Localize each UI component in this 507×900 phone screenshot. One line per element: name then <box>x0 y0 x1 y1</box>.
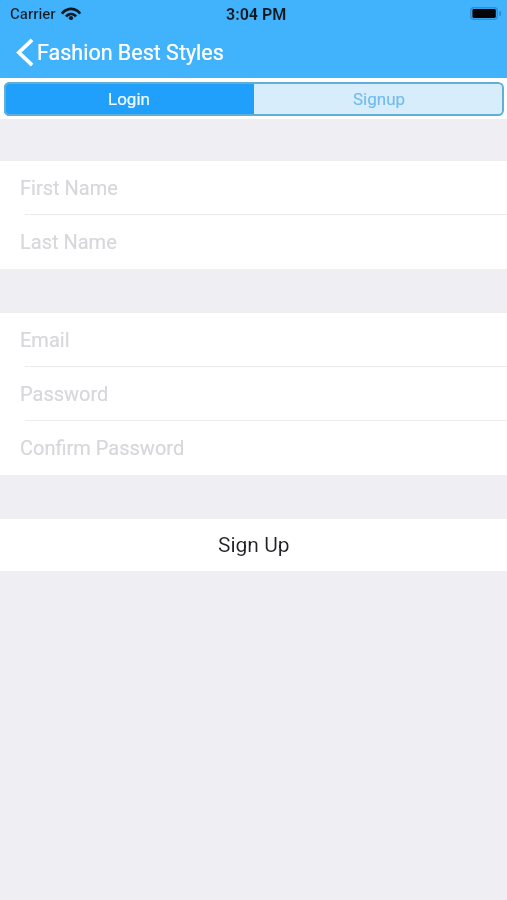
staticText: Signup <box>353 89 406 109</box>
button[interactable]: First Name <box>0 161 507 215</box>
button[interactable]: Sign Up <box>0 519 507 571</box>
staticText: Email <box>20 328 70 351</box>
staticText: Carrier <box>10 5 56 23</box>
button[interactable]: Password <box>0 367 507 421</box>
staticText: Password <box>20 382 109 405</box>
staticText: Last Name <box>20 230 117 253</box>
button[interactable]: Email <box>0 313 507 367</box>
button[interactable]: Back <box>0 32 234 73</box>
button[interactable]: Last Name <box>0 215 507 269</box>
button[interactable]: Signup <box>254 82 504 116</box>
button[interactable]: Login <box>4 82 254 116</box>
button[interactable]: Confirm Password <box>0 421 507 475</box>
staticText: 3:04 PM <box>226 5 287 24</box>
staticText: First Name <box>20 176 118 199</box>
staticText: Login <box>108 89 150 109</box>
staticText: Confirm Password <box>20 436 185 459</box>
staticText: Fashion Best Styles <box>37 40 224 65</box>
staticText: Sign Up <box>218 533 290 558</box>
